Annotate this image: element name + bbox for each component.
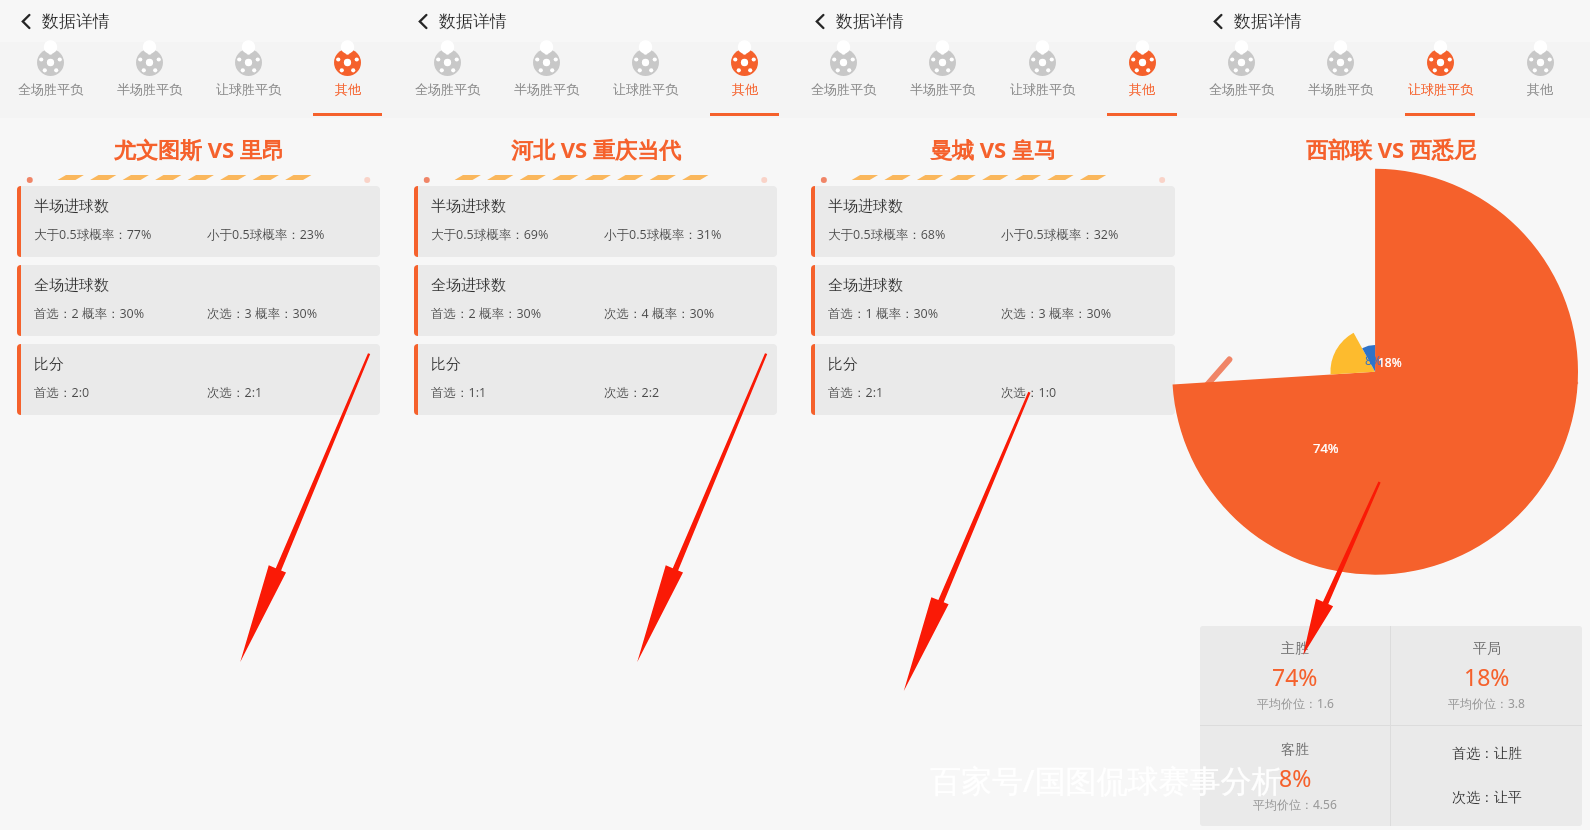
staticText: 尤文图斯 VS 里昂 <box>114 134 284 164</box>
button[interactable]: Back <box>808 9 832 33</box>
staticText: 半场胜平负 <box>117 81 182 97</box>
button[interactable]: Back <box>411 9 435 33</box>
staticText: 次选：让平 <box>1452 789 1522 807</box>
button[interactable]: 让球胜平负 <box>596 42 695 118</box>
button[interactable]: 半场胜平负 <box>497 42 596 118</box>
button[interactable]: 全场胜平负 <box>0 42 100 118</box>
staticText: 曼城 VS 皇马 <box>930 134 1056 164</box>
staticText: 其他 <box>732 81 758 97</box>
button[interactable]: 平局 <box>1391 626 1582 725</box>
staticText: 大于0.5球概率：69% <box>431 226 604 243</box>
staticText: 平均价位：1.6 <box>1257 695 1334 711</box>
button[interactable]: 其他 <box>695 42 794 118</box>
staticText: 半场胜平负 <box>910 81 975 97</box>
staticText: 半场胜平负 <box>514 81 579 97</box>
button[interactable]: Back <box>1206 9 1230 33</box>
button[interactable]: 比分 <box>414 344 777 415</box>
staticText: 数据详情 <box>439 11 507 32</box>
button[interactable]: 主胜 <box>1200 626 1390 725</box>
button[interactable]: 全场胜平负 <box>794 42 893 118</box>
staticText: 次选：3 概率：30% <box>207 305 380 322</box>
staticText: 小于0.5球概率：31% <box>604 226 777 243</box>
button[interactable]: 其他 <box>298 42 397 118</box>
staticText: 让球胜平负 <box>216 81 281 97</box>
staticText: 大于0.5球概率：77% <box>34 226 207 243</box>
button[interactable]: 半场胜平负 <box>100 42 199 118</box>
button[interactable]: 全场胜平负 <box>1192 42 1291 118</box>
staticText: 首选：让胜 <box>1452 745 1522 763</box>
staticText: 次选：2:2 <box>604 384 777 401</box>
staticText: 百家号/国图侃球赛事分析 <box>930 759 1283 801</box>
staticText: 次选：4 概率：30% <box>604 305 777 322</box>
staticText: 比分 <box>828 355 858 374</box>
staticText: 74% <box>1272 661 1318 692</box>
staticText: 全场胜平负 <box>1209 81 1274 97</box>
staticText: 半场进球数 <box>34 197 109 216</box>
button[interactable]: Back <box>14 9 38 33</box>
staticText: 次选：2:1 <box>207 384 380 401</box>
staticText: 全场胜平负 <box>18 81 83 97</box>
staticText: 其他 <box>335 81 361 97</box>
button[interactable]: 全场进球数 <box>17 265 380 336</box>
staticText: 小于0.5球概率：23% <box>207 226 380 243</box>
staticText: 首选：2:1 <box>828 384 1001 401</box>
button[interactable]: 其他 <box>1092 42 1192 118</box>
staticText: 数据详情 <box>1234 11 1302 32</box>
staticText: 客胜 <box>1281 741 1309 759</box>
staticText: 8% <box>1279 762 1312 793</box>
staticText: 全场进球数 <box>828 276 903 295</box>
staticText: 小于0.5球概率：32% <box>1001 226 1175 243</box>
staticText: 河北 VS 重庆当代 <box>511 134 681 164</box>
staticText: 次选：1:0 <box>1001 384 1175 401</box>
staticText: 半场进球数 <box>828 197 903 216</box>
staticText: 全场胜平负 <box>415 81 480 97</box>
staticText: 首选：2:0 <box>34 384 207 401</box>
staticText: 主胜 <box>1281 640 1309 658</box>
button[interactable]: 比分 <box>811 344 1175 415</box>
staticText: 半场进球数 <box>431 197 506 216</box>
staticText: 74% <box>1313 439 1339 457</box>
staticText: 其他 <box>1129 81 1155 97</box>
staticText: 次选：3 概率：30% <box>1001 305 1175 322</box>
button[interactable]: 半场胜平负 <box>893 42 992 118</box>
staticText: 18% <box>1464 661 1510 692</box>
button[interactable]: 首选：让胜 <box>1391 726 1582 826</box>
button[interactable]: 让球胜平负 <box>1390 42 1490 118</box>
staticText: 让球胜平负 <box>1010 81 1075 97</box>
staticText: 平均价位：4.56 <box>1253 796 1337 812</box>
staticText: 半场胜平负 <box>1308 81 1373 97</box>
staticText: 平均价位：3.8 <box>1448 695 1525 711</box>
staticText: 其他 <box>1527 81 1553 97</box>
button[interactable]: 半场进球数 <box>414 186 777 257</box>
staticText: 首选：2 概率：30% <box>34 305 207 322</box>
staticText: 让球胜平负 <box>613 81 678 97</box>
staticText: 平局 <box>1473 640 1501 658</box>
button[interactable]: 让球胜平负 <box>199 42 298 118</box>
button[interactable]: 客胜 <box>1200 726 1390 826</box>
button[interactable]: 全场胜平负 <box>397 42 497 118</box>
button[interactable]: 其他 <box>1490 42 1590 118</box>
staticText: 18% <box>1378 354 1402 370</box>
button[interactable]: 半场进球数 <box>811 186 1175 257</box>
staticText: 大于0.5球概率：68% <box>828 226 1001 243</box>
staticText: 全场进球数 <box>431 276 506 295</box>
staticText: 全场进球数 <box>34 276 109 295</box>
staticText: 首选：1 概率：30% <box>828 305 1001 322</box>
button[interactable]: 比分 <box>17 344 380 415</box>
staticText: 比分 <box>431 355 461 374</box>
staticText: 8% <box>1365 352 1382 368</box>
staticText: 数据详情 <box>42 11 110 32</box>
staticText: 比分 <box>34 355 64 374</box>
button[interactable]: 半场胜平负 <box>1291 42 1390 118</box>
staticText: 首选：2 概率：30% <box>431 305 604 322</box>
staticText: 全场胜平负 <box>811 81 876 97</box>
staticText: 让球胜平负 <box>1408 81 1473 97</box>
staticText: 西部联 VS 西悉尼 <box>1306 134 1476 164</box>
button[interactable]: 全场进球数 <box>811 265 1175 336</box>
staticText: 数据详情 <box>836 11 904 32</box>
staticText: 首选：1:1 <box>431 384 604 401</box>
button[interactable]: 让球胜平负 <box>992 42 1092 118</box>
button[interactable]: 半场进球数 <box>17 186 380 257</box>
button[interactable]: 全场进球数 <box>414 265 777 336</box>
